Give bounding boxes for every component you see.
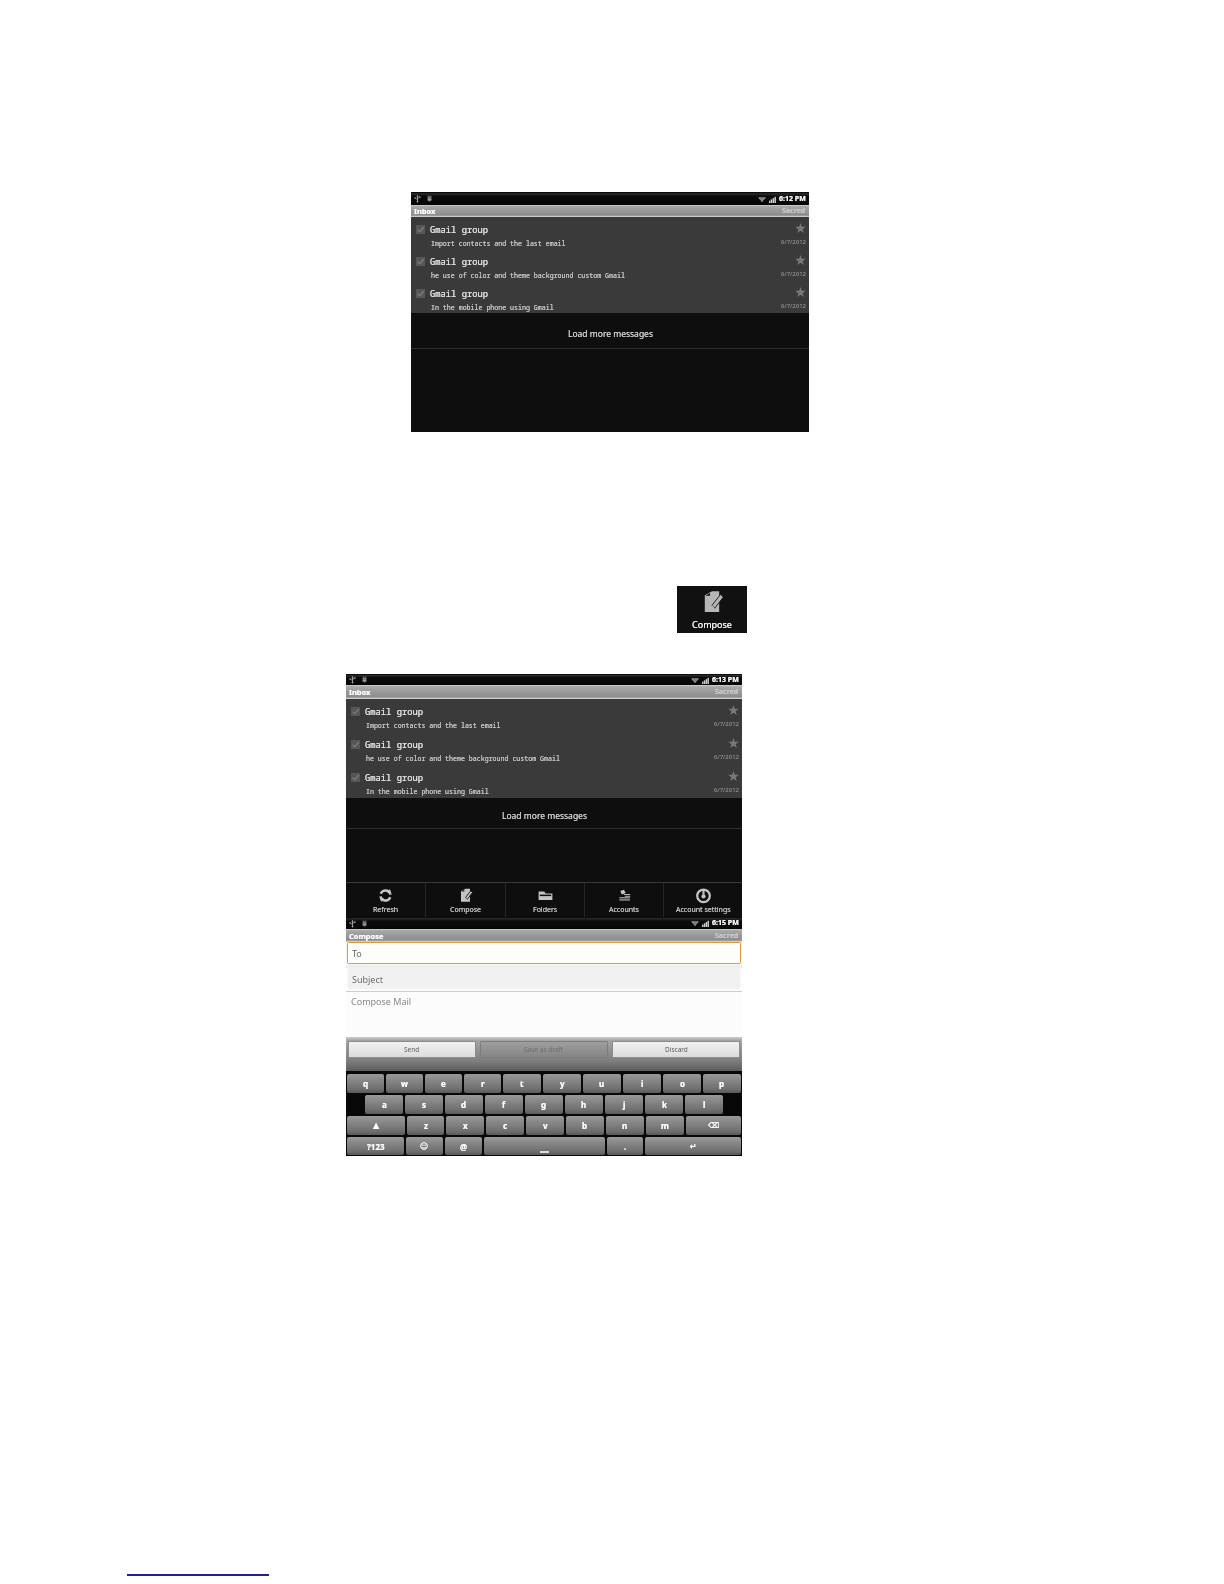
button[interactable]: Refresh: [346, 883, 425, 917]
staticText: Compose: [692, 618, 732, 630]
staticText: l: [703, 1099, 706, 1110]
staticText: Gmail group: [365, 706, 424, 718]
staticText: n: [622, 1120, 628, 1131]
staticText: Gmail group: [430, 288, 489, 300]
staticText: 6/7/2012: [781, 238, 807, 246]
staticText: Inbox: [414, 206, 436, 216]
button[interactable]: z: [407, 1116, 444, 1135]
button[interactable]: q: [347, 1074, 384, 1093]
button[interactable]: ▲: [347, 1116, 405, 1135]
button[interactable]: To: [348, 943, 740, 963]
staticText: r: [481, 1078, 485, 1089]
button[interactable]: t: [503, 1074, 541, 1093]
button[interactable]: Compose: [677, 586, 747, 633]
button[interactable]: Send: [349, 1042, 475, 1057]
button[interactable]: Compose Mail: [346, 992, 742, 1037]
staticText: g: [541, 1099, 547, 1110]
button[interactable]: k: [645, 1095, 683, 1114]
staticText: Gmail group: [430, 224, 489, 236]
staticText: x: [463, 1120, 468, 1131]
button[interactable]: Load more messages: [411, 313, 809, 348]
staticText: Refresh: [373, 905, 399, 915]
button[interactable]: b: [566, 1116, 604, 1135]
staticText: ?123: [367, 1141, 385, 1152]
button[interactable]: n: [606, 1116, 644, 1135]
button[interactable]: p: [703, 1074, 741, 1093]
button[interactable]: Accounts: [585, 883, 663, 917]
button[interactable]: Gmail group: [411, 217, 809, 249]
staticText: y: [560, 1078, 565, 1089]
button[interactable]: c: [486, 1116, 524, 1135]
button[interactable]: x: [446, 1116, 484, 1135]
button[interactable]: y: [543, 1074, 581, 1093]
button[interactable]: j: [605, 1095, 643, 1114]
button[interactable]: ☺: [406, 1137, 443, 1155]
staticText: u: [599, 1078, 605, 1089]
button[interactable]: s: [405, 1095, 443, 1114]
button[interactable]: r: [464, 1074, 501, 1093]
button[interactable]: Subject: [348, 968, 740, 989]
button[interactable]: Gmail group: [346, 699, 742, 732]
button[interactable]: u: [583, 1074, 621, 1093]
button[interactable]: f: [485, 1095, 523, 1114]
button[interactable]: l: [685, 1095, 723, 1114]
button[interactable]: g: [525, 1095, 563, 1114]
staticText: To: [352, 947, 362, 959]
staticText: @: [460, 1141, 468, 1152]
staticText: 6:13 PM: [712, 675, 739, 685]
staticText: i: [641, 1078, 644, 1089]
staticText: Load more messages: [568, 328, 653, 340]
staticText: Send: [404, 1045, 420, 1054]
staticText: 6/7/2012: [781, 270, 807, 278]
button[interactable]: Folders: [506, 883, 584, 917]
staticText: Sacred: [715, 931, 739, 941]
staticText: f: [502, 1099, 506, 1110]
button[interactable]: v: [526, 1116, 564, 1135]
button[interactable]: [484, 1137, 605, 1155]
button[interactable]: e: [425, 1074, 462, 1093]
button[interactable]: i: [623, 1074, 661, 1093]
staticText: Compose Mail: [351, 995, 412, 1007]
staticText: Folders: [533, 905, 558, 915]
staticText: Account settings: [676, 905, 731, 915]
staticText: Inbox: [349, 687, 371, 697]
staticText: 6:12 PM: [779, 194, 806, 204]
staticText: b: [582, 1120, 588, 1131]
staticText: Subject: [352, 973, 384, 985]
staticText: ☺: [420, 1142, 429, 1151]
button[interactable]: a: [365, 1095, 403, 1114]
button[interactable]: Discard: [613, 1042, 739, 1057]
staticText: 6/7/2012: [714, 720, 740, 728]
button[interactable]: ⌫: [686, 1116, 741, 1135]
button[interactable]: o: [663, 1074, 701, 1093]
button[interactable]: w: [386, 1074, 423, 1093]
staticText: Gmail group: [430, 256, 489, 268]
button[interactable]: ↵: [645, 1137, 741, 1155]
button[interactable]: .: [607, 1137, 643, 1155]
staticText: 6/7/2012: [781, 302, 807, 310]
button[interactable]: h: [565, 1095, 603, 1114]
staticText: Load more messages: [502, 810, 587, 822]
staticText: q: [363, 1078, 369, 1089]
staticText: k: [662, 1099, 667, 1110]
button[interactable]: Gmail group: [346, 732, 742, 765]
staticText: z: [424, 1120, 428, 1131]
button[interactable]: ?123: [347, 1137, 404, 1155]
staticText: d: [461, 1099, 467, 1110]
button[interactable]: Gmail group: [346, 765, 742, 798]
button[interactable]: Gmail group: [411, 249, 809, 281]
button[interactable]: Gmail group: [411, 281, 809, 313]
staticText: Save as draft: [524, 1045, 564, 1054]
staticText: Gmail group: [365, 739, 424, 751]
staticText: o: [680, 1078, 685, 1089]
button[interactable]: @: [445, 1137, 482, 1155]
button[interactable]: Account settings: [664, 883, 742, 917]
staticText: s: [422, 1099, 427, 1110]
button[interactable]: Compose: [426, 883, 505, 917]
button[interactable]: Save as draft: [481, 1042, 607, 1057]
button[interactable]: d: [445, 1095, 483, 1114]
button[interactable]: m: [646, 1116, 684, 1135]
staticText: Compose: [349, 931, 384, 941]
button[interactable]: Load more messages: [346, 798, 742, 828]
staticText: t: [520, 1078, 524, 1089]
